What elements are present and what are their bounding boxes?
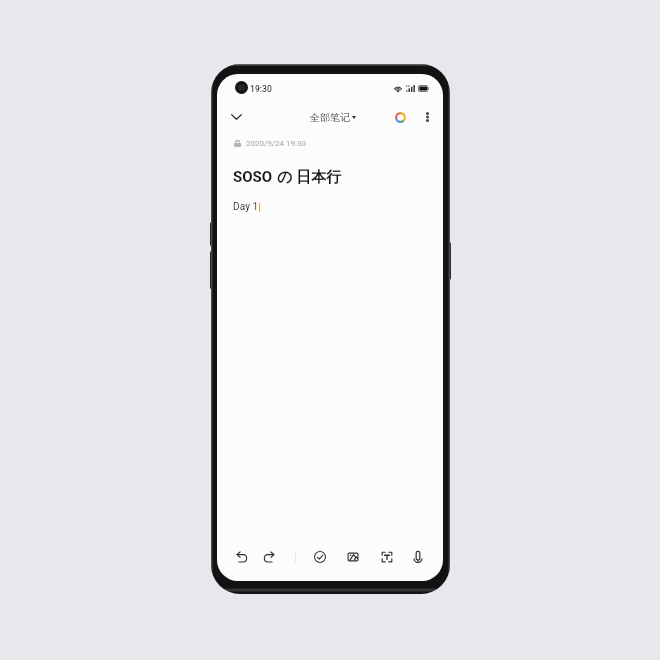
button[interactable]: Collapse [224, 105, 248, 129]
button[interactable]: Checklist [308, 545, 332, 569]
button[interactable]: Redo [257, 545, 281, 569]
staticText: SOSO [233, 168, 273, 186]
staticText: 2020/9/24 19:30 [246, 139, 306, 148]
button[interactable]: AI assistant [388, 105, 412, 129]
staticText: 全部笔记 [310, 111, 350, 124]
button[interactable]: More options [415, 105, 439, 129]
staticText: 19:30 [250, 84, 272, 94]
button[interactable]: Undo [230, 545, 254, 569]
staticText: の 日本行 [273, 166, 342, 186]
staticText: Day 1 [233, 201, 259, 213]
button[interactable]: 全部笔记 [307, 108, 359, 127]
button[interactable]: Voice input [406, 545, 430, 569]
button[interactable]: Insert image [341, 545, 365, 569]
button[interactable]: Scan text [375, 545, 399, 569]
